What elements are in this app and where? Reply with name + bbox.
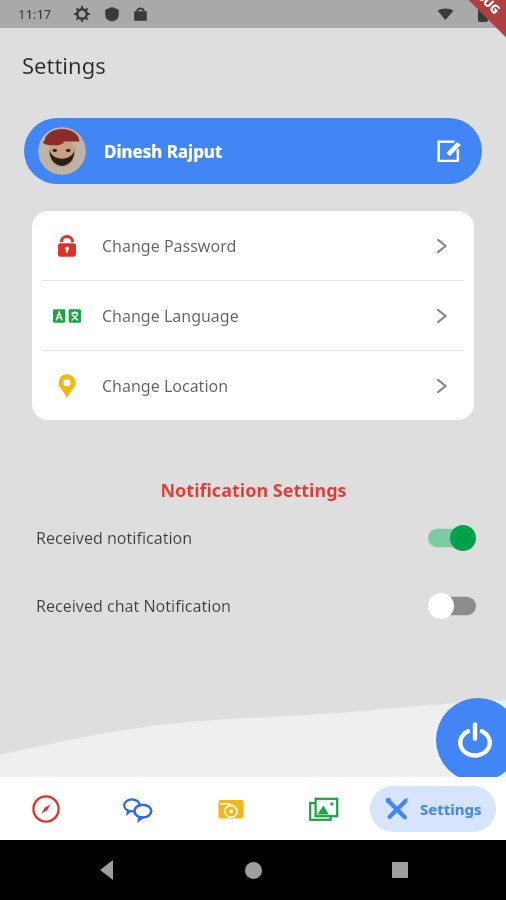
button[interactable]: Settings (370, 786, 496, 832)
button[interactable]: Dinesh Rajput (24, 118, 482, 184)
staticText: Change Language (102, 305, 239, 327)
staticText: DEBUG (463, 0, 504, 17)
button[interactable]: Received notification (0, 516, 506, 560)
staticText: Change Password (102, 235, 237, 257)
button[interactable]: Edit profile (428, 131, 468, 171)
staticText: Settings (420, 799, 482, 819)
button[interactable]: Power (436, 698, 506, 782)
button[interactable]: Change Location (32, 351, 474, 420)
button[interactable]: Gallery (277, 777, 370, 840)
staticText: Settings (22, 50, 106, 80)
staticText: Change Location (102, 375, 229, 397)
button[interactable]: Camera (184, 777, 277, 840)
staticText: Notification Settings (160, 478, 347, 503)
button[interactable]: Chat (92, 777, 184, 840)
staticText: Received chat Notification (36, 595, 231, 617)
button[interactable]: Explore (0, 777, 92, 840)
staticText: 11:17 (18, 5, 52, 23)
staticText: Dinesh Rajput (104, 140, 223, 163)
staticText: Received notification (36, 527, 193, 549)
button[interactable]: Received chat Notification (0, 584, 506, 628)
button[interactable]: Change Language (32, 281, 474, 350)
button[interactable]: Change Password (32, 211, 474, 280)
